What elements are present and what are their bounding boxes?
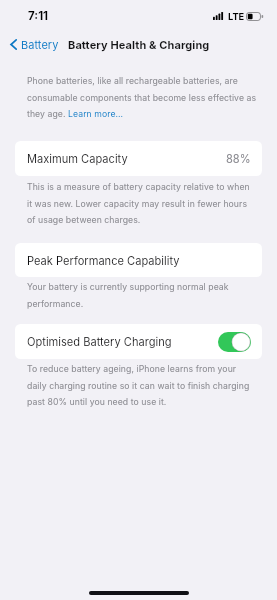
button[interactable]: Optimised Battery Charging toggle xyxy=(218,332,251,352)
staticText: This is a measure of battery capacity re… xyxy=(27,182,256,225)
staticText: Battery xyxy=(21,38,59,51)
staticText: 88% xyxy=(226,152,251,165)
button[interactable]: Maximum Capacity xyxy=(15,141,262,176)
staticText: Peak Performance Capability xyxy=(27,254,180,267)
staticText: Maximum Capacity xyxy=(27,152,128,165)
button[interactable]: Optimised Battery Charging xyxy=(15,324,262,359)
staticText: LTE xyxy=(228,11,245,22)
staticText: Battery Health & Charging xyxy=(68,38,210,51)
staticText: Your battery is currently supporting nor… xyxy=(27,282,256,309)
other: Back xyxy=(10,39,17,50)
staticText: Phone batteries, like all rechargeable b… xyxy=(27,76,261,119)
staticText: Optimised Battery Charging xyxy=(27,335,172,348)
button[interactable]: Back xyxy=(6,33,63,55)
staticText: To reduce battery ageing, iPhone learns … xyxy=(27,364,256,407)
staticText: 7:11 xyxy=(28,9,49,23)
button[interactable]: Peak Performance Capability xyxy=(15,243,262,277)
